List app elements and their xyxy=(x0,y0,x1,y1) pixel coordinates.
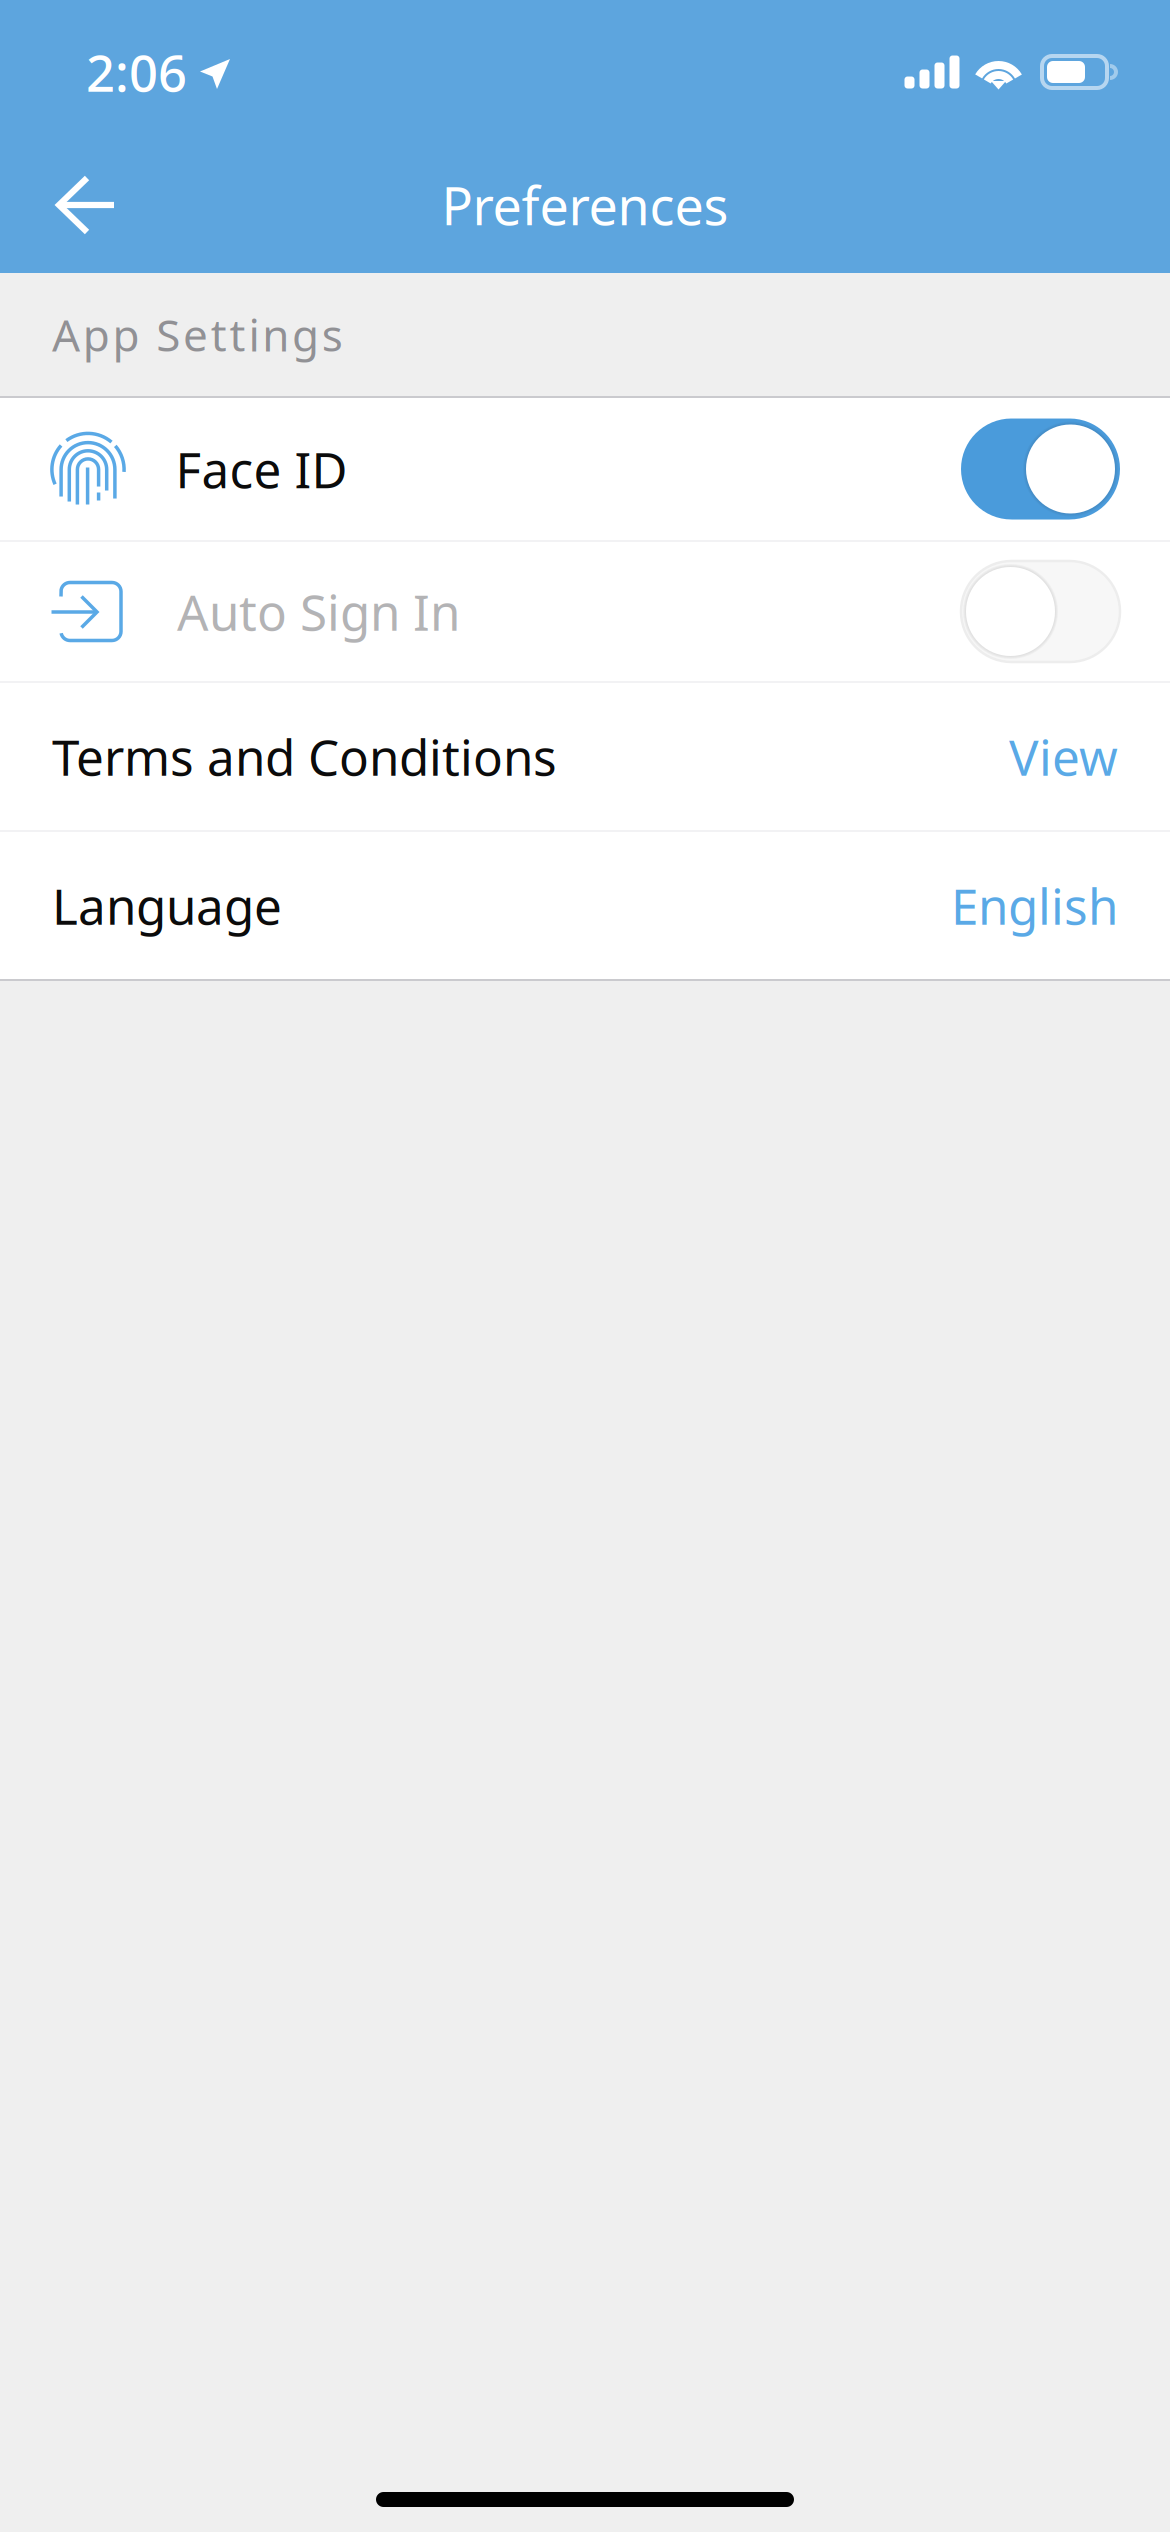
staticText: 2:06 xyxy=(86,38,187,106)
button[interactable]: Face ID xyxy=(0,398,1170,540)
staticText: Face ID xyxy=(175,436,347,502)
button[interactable]: Back xyxy=(0,137,157,273)
button[interactable]: Terms and Conditions xyxy=(0,683,1170,830)
staticText: Preferences xyxy=(441,170,728,240)
staticText: Language xyxy=(52,873,282,938)
staticText: View xyxy=(1009,724,1118,789)
button[interactable]: Language xyxy=(0,832,1170,979)
staticText: App Settings xyxy=(52,305,343,364)
staticText: English xyxy=(951,873,1118,938)
staticText: Terms and Conditions xyxy=(52,724,557,789)
staticText: Auto Sign In xyxy=(177,579,460,644)
button[interactable]: Auto Sign In xyxy=(0,542,1170,681)
